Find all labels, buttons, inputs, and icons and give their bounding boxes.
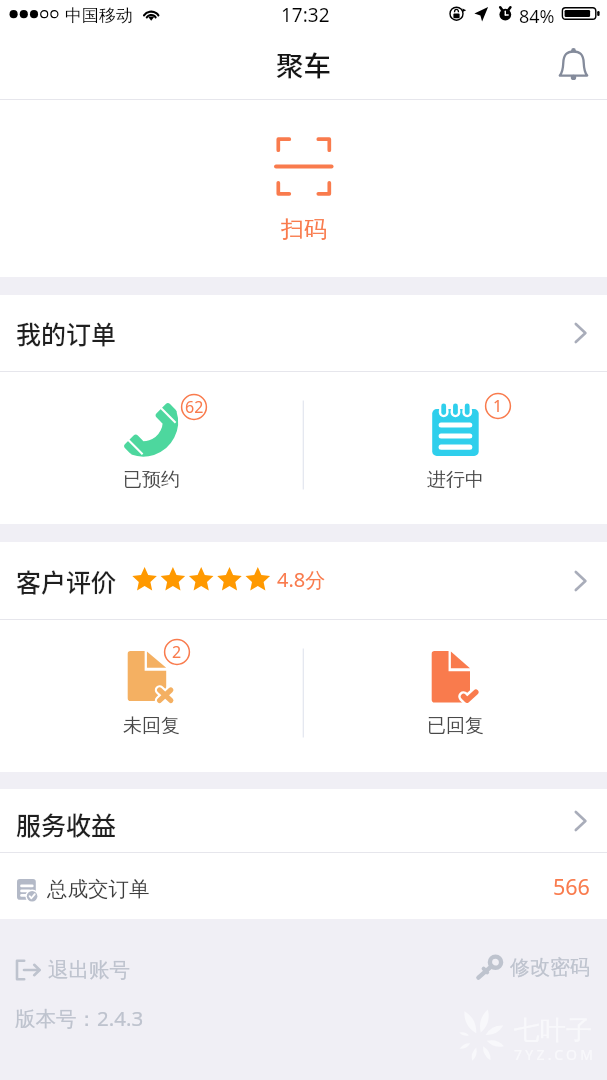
staticText: 已预约 (123, 468, 180, 492)
button[interactable]: 我的订单 (0, 295, 607, 371)
button[interactable]: 修改密码 (473, 951, 595, 984)
staticText: 已回复 (427, 714, 484, 738)
staticText: 1 (493, 395, 503, 417)
button[interactable]: 总成交订单 (0, 853, 607, 919)
staticText: 进行中 (427, 468, 484, 492)
staticText: 修改密码 (510, 955, 590, 980)
staticText: 版本号：2.4.3 (15, 1004, 144, 1032)
button[interactable]: 未回复 (0, 620, 303, 772)
staticText: 总成交订单 (47, 876, 150, 902)
staticText: 2 (172, 641, 182, 663)
staticText: 84% (519, 4, 555, 29)
button[interactable]: 客户评价 (0, 542, 607, 619)
staticText: 中国移动 (65, 5, 133, 26)
button[interactable]: 进行中 (304, 372, 607, 524)
staticText: 62 (185, 396, 204, 418)
staticText: 我的订单 (16, 315, 117, 351)
staticText: 聚车 (276, 44, 331, 84)
button[interactable]: 退出账号 (14, 955, 130, 985)
staticText: 4.8分 (277, 566, 326, 593)
staticText: 17:32 (281, 2, 330, 28)
staticText: 客户评价 (16, 563, 117, 599)
staticText: 七叶子 (514, 1014, 592, 1047)
button[interactable]: 已回复 (304, 620, 607, 772)
staticText: 退出账号 (48, 957, 130, 983)
staticText: 未回复 (123, 714, 180, 738)
staticText: 566 (553, 872, 590, 901)
staticText: 扫码 (281, 215, 327, 244)
staticText: 服务收益 (16, 806, 117, 842)
button[interactable]: 扫码 (244, 128, 364, 248)
button[interactable]: 已预约 (0, 372, 303, 524)
button[interactable]: Notifications (551, 40, 607, 100)
button[interactable]: 服务收益 (0, 789, 607, 852)
